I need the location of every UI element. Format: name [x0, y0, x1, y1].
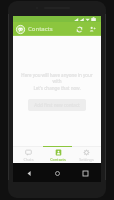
button[interactable]: Chats: [13, 146, 43, 163]
staticText: Here you will have anyone in your with: [19, 72, 95, 84]
staticText: Let's change that now.: [19, 85, 95, 91]
staticText: Contacts: [28, 25, 53, 33]
button[interactable]: Add first new contact: [28, 99, 86, 111]
staticText: Add first new contact: [34, 102, 80, 108]
staticText: Settings: [79, 157, 94, 162]
button[interactable]: Home: [51, 167, 63, 179]
button[interactable]: Settings: [72, 146, 101, 163]
button[interactable]: Add contact: [87, 24, 98, 35]
button[interactable]: Recent apps: [79, 167, 91, 179]
button[interactable]: Sync contacts: [74, 24, 85, 35]
staticText: Contacts: [50, 157, 66, 162]
button[interactable]: Contacts: [43, 146, 72, 163]
button[interactable]: Back: [23, 167, 35, 179]
staticText: Chats: [23, 157, 34, 162]
button[interactable]: App logo: [16, 25, 25, 34]
